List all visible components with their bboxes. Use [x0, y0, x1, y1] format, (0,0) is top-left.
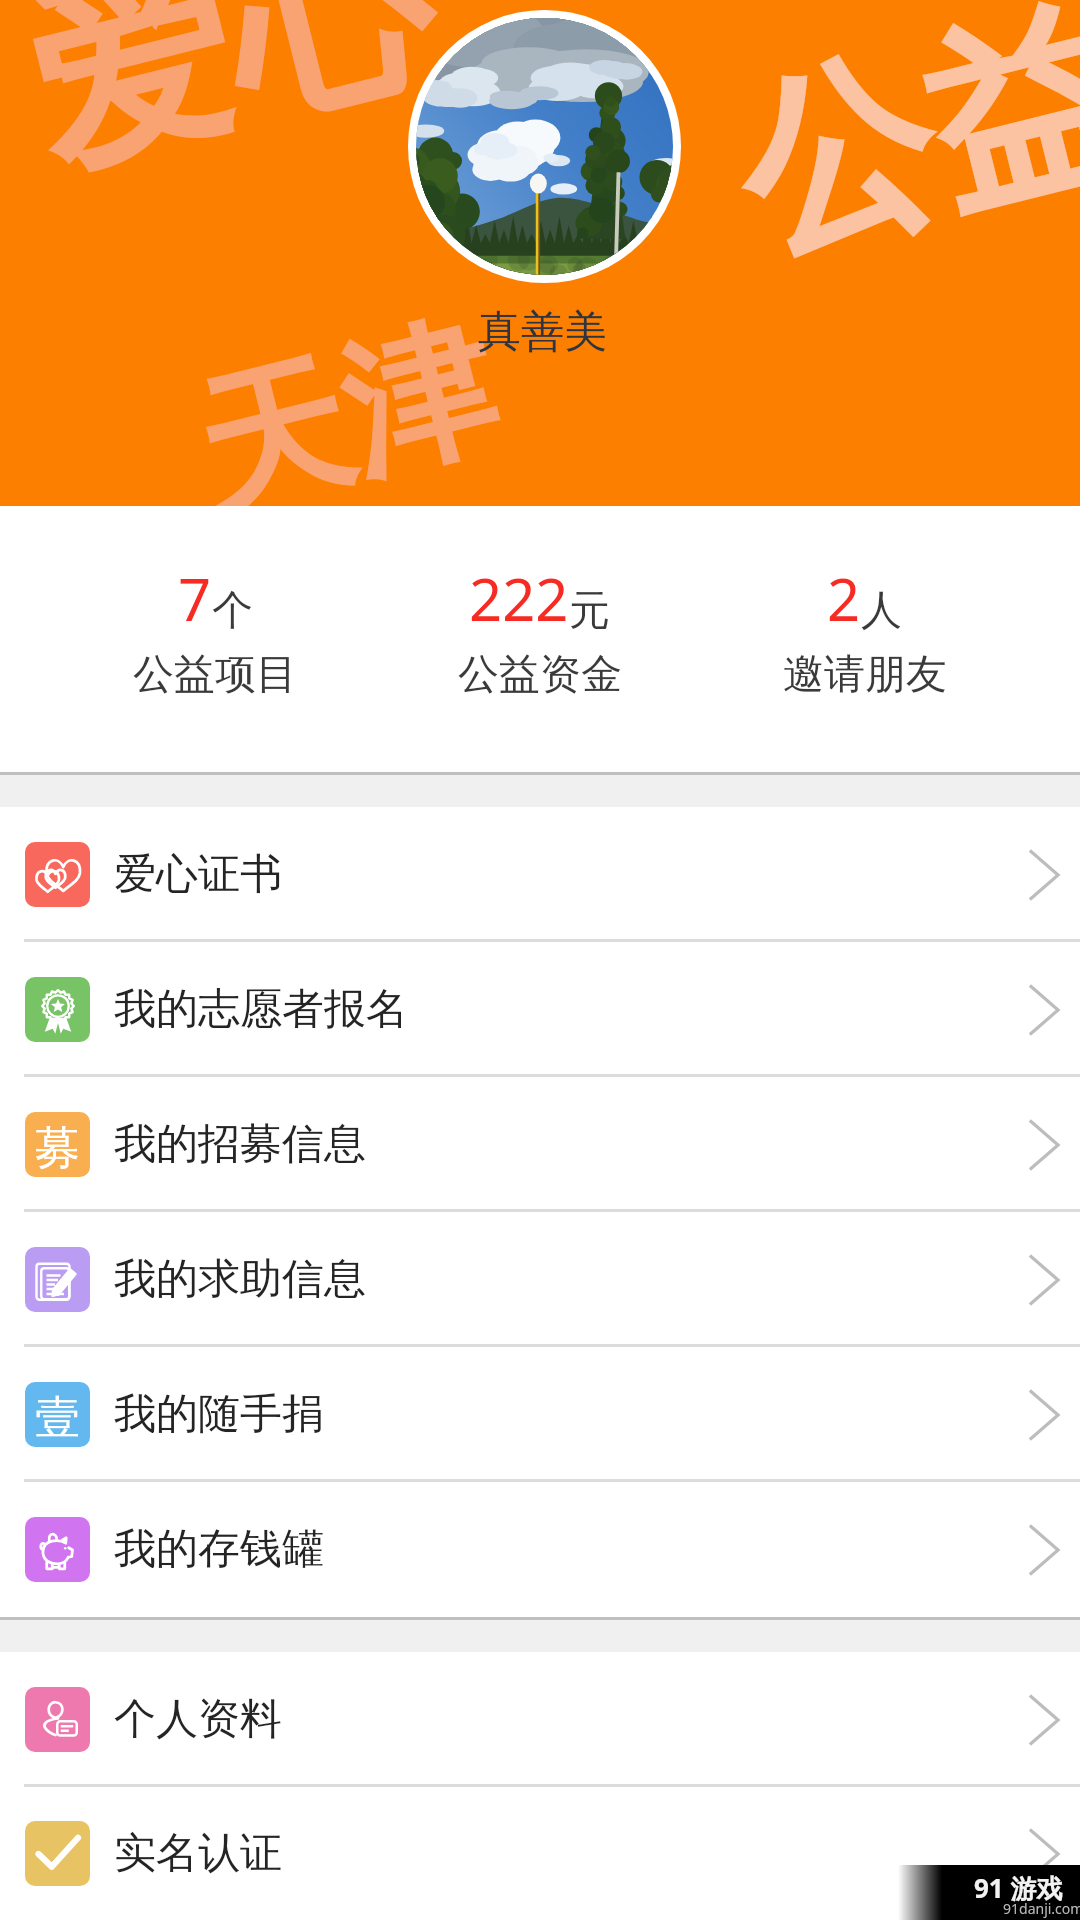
- staticText: 7: [178, 559, 212, 638]
- staticText: 我的志愿者报名: [114, 983, 408, 1036]
- button[interactable]: 我的求助信息: [0, 1212, 1080, 1347]
- staticText: 公益: [711, 0, 1080, 302]
- button[interactable]: 222: [377, 506, 702, 772]
- staticText: 2: [827, 559, 861, 638]
- staticText: 我的求助信息: [114, 1253, 366, 1306]
- staticText: 个: [212, 585, 253, 637]
- button[interactable]: 爱心证书: [0, 807, 1080, 942]
- staticText: 222: [469, 559, 569, 638]
- button[interactable]: 我的志愿者报名: [0, 942, 1080, 1077]
- staticText: 91 游戏: [974, 1870, 1063, 1906]
- staticText: 募: [35, 1120, 80, 1177]
- staticText: 爱心: [1, 0, 455, 215]
- button[interactable]: 7: [53, 506, 377, 772]
- staticText: 人: [861, 585, 902, 637]
- button[interactable]: 壹: [0, 1347, 1080, 1482]
- staticText: 91danji.com: [1003, 1899, 1080, 1918]
- staticText: 爱心证书: [114, 848, 282, 901]
- button[interactable]: 我的存钱罐: [0, 1482, 1080, 1617]
- button[interactable]: 头像: [416, 18, 673, 275]
- staticText: 元: [569, 585, 610, 637]
- staticText: 实名认证: [114, 1827, 282, 1880]
- button[interactable]: 实名认证: [0, 1787, 1080, 1920]
- staticText: 我的存钱罐: [114, 1523, 324, 1576]
- staticText: 我的随手捐: [114, 1388, 324, 1441]
- staticText: 公益项目: [133, 649, 297, 701]
- button[interactable]: 2: [702, 506, 1027, 772]
- staticText: 壹: [35, 1390, 80, 1447]
- staticText: 个人资料: [114, 1693, 282, 1746]
- staticText: 公益资金: [458, 649, 622, 701]
- staticText: 邀请朋友: [783, 649, 947, 701]
- staticText: 我的招募信息: [114, 1118, 366, 1171]
- button[interactable]: 募: [0, 1077, 1080, 1212]
- staticText: 真善美: [478, 305, 607, 359]
- button[interactable]: 个人资料: [0, 1652, 1080, 1787]
- staticText: 天津: [178, 291, 514, 547]
